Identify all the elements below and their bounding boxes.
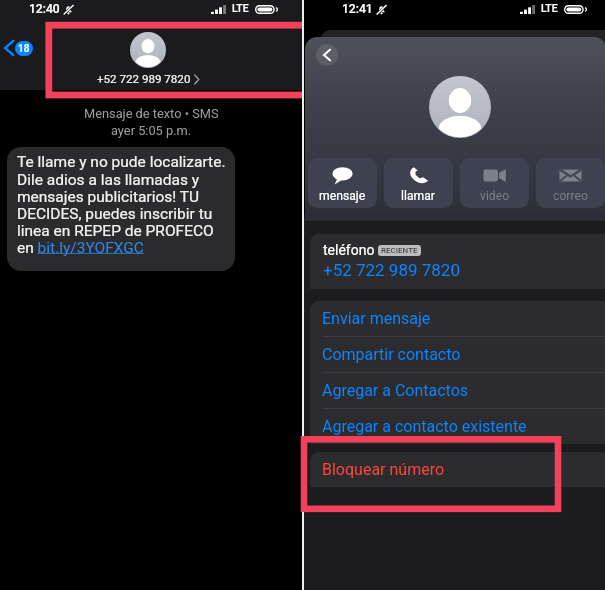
button[interactable]: Back — [316, 44, 338, 66]
staticText: Te llame y no pude localizarte. Dile adi… — [17, 153, 226, 256]
staticText: Mensaje de texto • SMS — [84, 106, 219, 121]
button[interactable]: Bloquear número — [310, 452, 605, 487]
button[interactable]: Enviar mensaje — [310, 301, 605, 337]
button[interactable]: Te llame y no pude localizarte. Dile adi… — [7, 147, 235, 271]
staticText: llamar — [401, 189, 436, 203]
button[interactable]: correo — [536, 158, 605, 208]
staticText: +52 722 989 7820 — [97, 72, 191, 86]
staticText: video — [480, 189, 510, 203]
button[interactable]: llamar — [384, 158, 453, 208]
staticText: Compartir contacto — [322, 345, 461, 364]
staticText: mensaje — [319, 189, 366, 203]
button[interactable]: mensaje — [308, 158, 377, 208]
staticText: LTE — [232, 2, 249, 14]
button[interactable]: Contact info — [130, 32, 166, 68]
staticText: Enviar mensaje — [322, 309, 431, 328]
staticText: teléfono — [323, 242, 375, 258]
button[interactable]: Back to conversations, 18 unread — [4, 39, 33, 57]
button[interactable]: Agregar a Contactos — [310, 373, 605, 409]
staticText: ayer 5:05 p.m. — [111, 123, 192, 138]
staticText: +52 722 989 7820 — [323, 260, 460, 280]
staticText: correo — [553, 189, 588, 203]
button[interactable]: video — [460, 158, 529, 208]
button[interactable]: teléfono — [310, 234, 605, 289]
staticText: 18 — [18, 43, 30, 55]
button[interactable]: Agregar a contacto existente — [310, 409, 605, 444]
staticText: 12:40 — [29, 2, 60, 16]
staticText: RECIENTE — [381, 246, 418, 255]
staticText: Bloquear número — [322, 460, 445, 479]
staticText: Agregar a contacto existente — [322, 417, 527, 436]
staticText: Agregar a Contactos — [322, 381, 469, 400]
staticText: LTE — [541, 2, 558, 14]
button[interactable]: Compartir contacto — [310, 337, 605, 373]
staticText: 12:41 — [342, 2, 373, 16]
